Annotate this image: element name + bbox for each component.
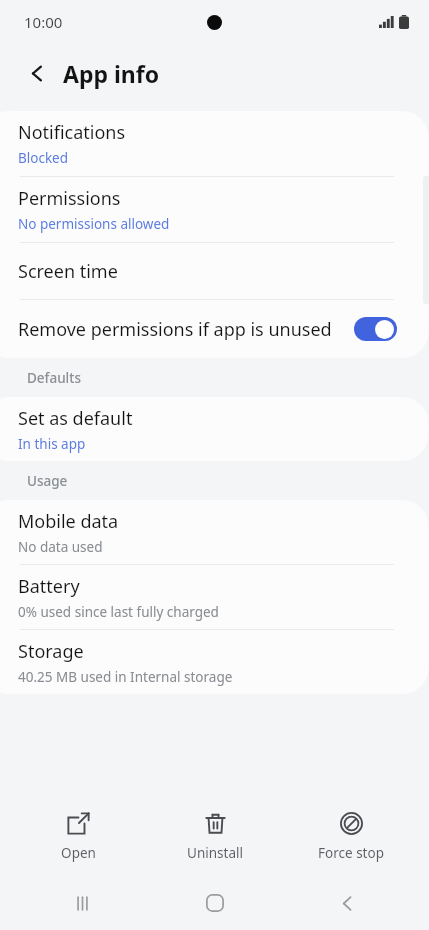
other: Open bbox=[67, 812, 90, 835]
staticText: Storage bbox=[18, 639, 84, 664]
staticText: Blocked bbox=[18, 149, 69, 167]
staticText: Battery bbox=[18, 574, 80, 599]
staticText: Mobile data bbox=[18, 509, 119, 534]
staticText: Screen time bbox=[18, 259, 118, 284]
button[interactable]: Open bbox=[19, 807, 137, 867]
staticText: Set as default bbox=[18, 406, 133, 431]
button[interactable]: Force stop bbox=[292, 807, 410, 867]
staticText: No data used bbox=[18, 538, 103, 556]
button[interactable]: Remove permissions if app is unused bbox=[0, 300, 420, 358]
button[interactable]: Notifications bbox=[0, 111, 420, 176]
staticText: Remove permissions if app is unused bbox=[18, 317, 346, 342]
button[interactable]: Home bbox=[165, 876, 265, 930]
button[interactable]: Battery bbox=[0, 565, 420, 629]
staticText: No permissions allowed bbox=[18, 215, 170, 233]
other: Uninstall bbox=[204, 812, 227, 835]
staticText: 10:00 bbox=[24, 12, 63, 32]
staticText: App info bbox=[63, 58, 160, 89]
button[interactable]: Back bbox=[18, 54, 56, 92]
staticText: Notifications bbox=[18, 120, 126, 145]
button[interactable]: Mobile data bbox=[0, 500, 420, 564]
staticText: Uninstall bbox=[187, 844, 243, 862]
staticText: 0% used since last fully charged bbox=[18, 603, 219, 621]
button[interactable]: Uninstall bbox=[156, 807, 274, 867]
staticText: Permissions bbox=[18, 186, 121, 211]
staticText: In this app bbox=[18, 435, 86, 453]
button[interactable]: Permissions bbox=[0, 177, 420, 242]
button[interactable]: Set as default bbox=[0, 397, 420, 461]
button[interactable]: Back bbox=[297, 876, 397, 930]
staticText: Usage bbox=[27, 472, 68, 490]
staticText: 40.25 MB used in Internal storage bbox=[18, 668, 233, 686]
button[interactable]: Recents bbox=[32, 876, 132, 930]
button[interactable]: Screen time bbox=[0, 243, 420, 299]
staticText: Force stop bbox=[318, 844, 384, 862]
staticText: Defaults bbox=[27, 369, 81, 387]
staticText: Open bbox=[61, 844, 96, 862]
other: Force stop bbox=[340, 812, 363, 835]
button[interactable]: Storage bbox=[0, 630, 420, 694]
